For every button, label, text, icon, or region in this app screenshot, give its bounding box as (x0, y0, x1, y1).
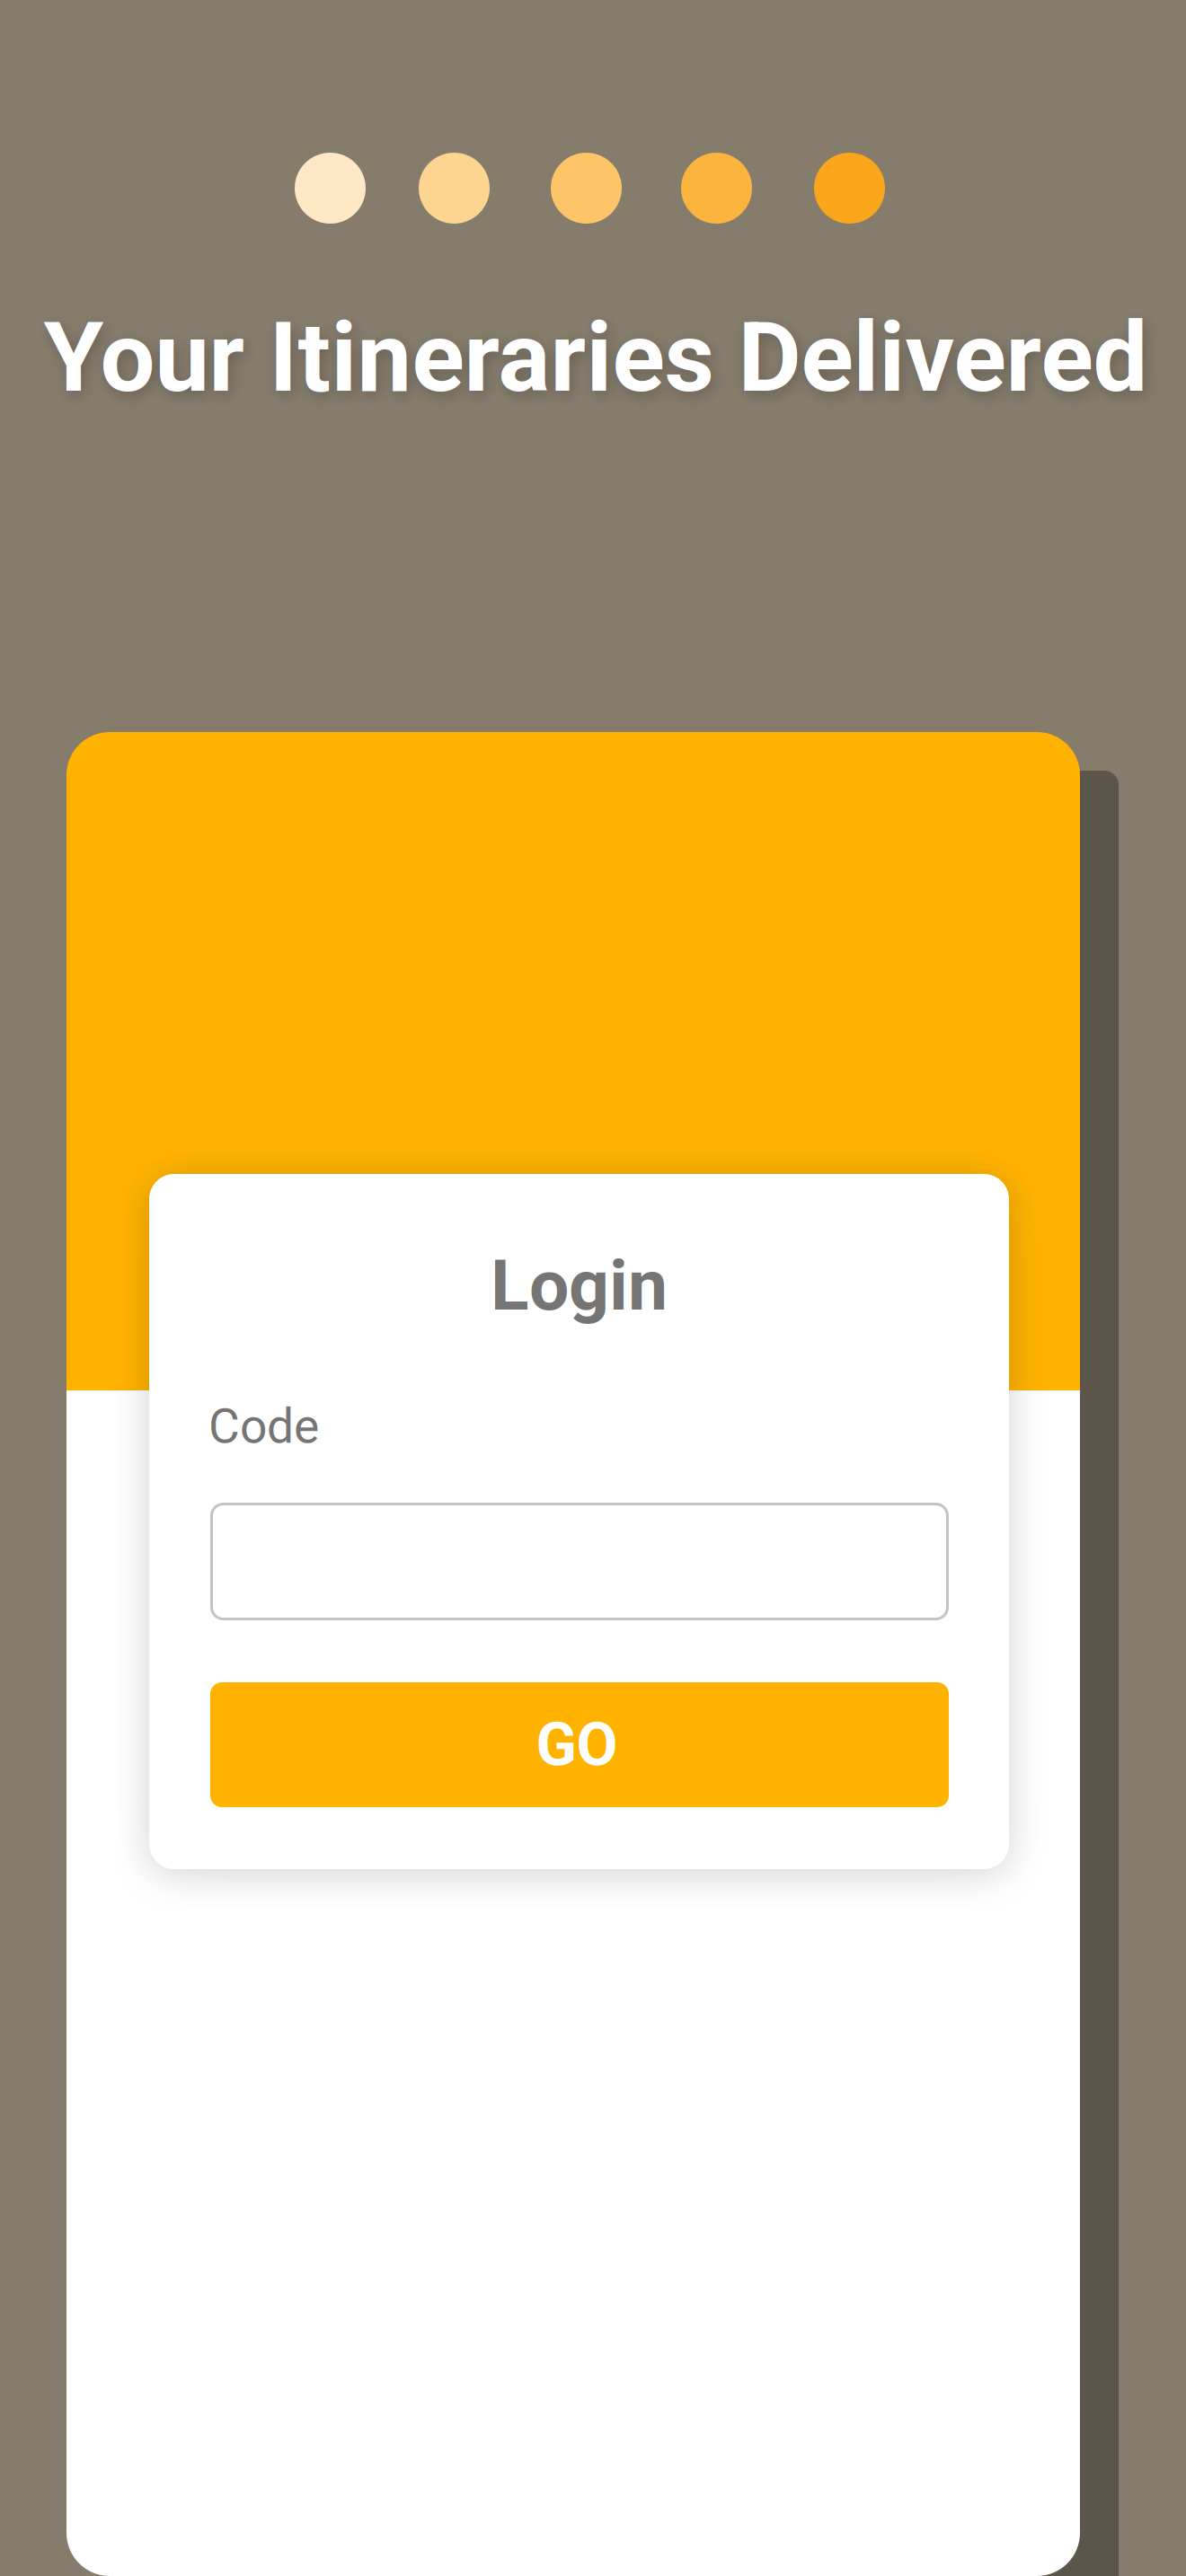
button[interactable]: GO (210, 1682, 949, 1807)
button[interactable]: Code (210, 1503, 949, 1620)
staticText: Code (208, 1398, 319, 1454)
staticText: Your Itineraries Delivered (44, 301, 1148, 414)
staticText: Login (491, 1244, 668, 1327)
staticText: GO (536, 1710, 618, 1780)
